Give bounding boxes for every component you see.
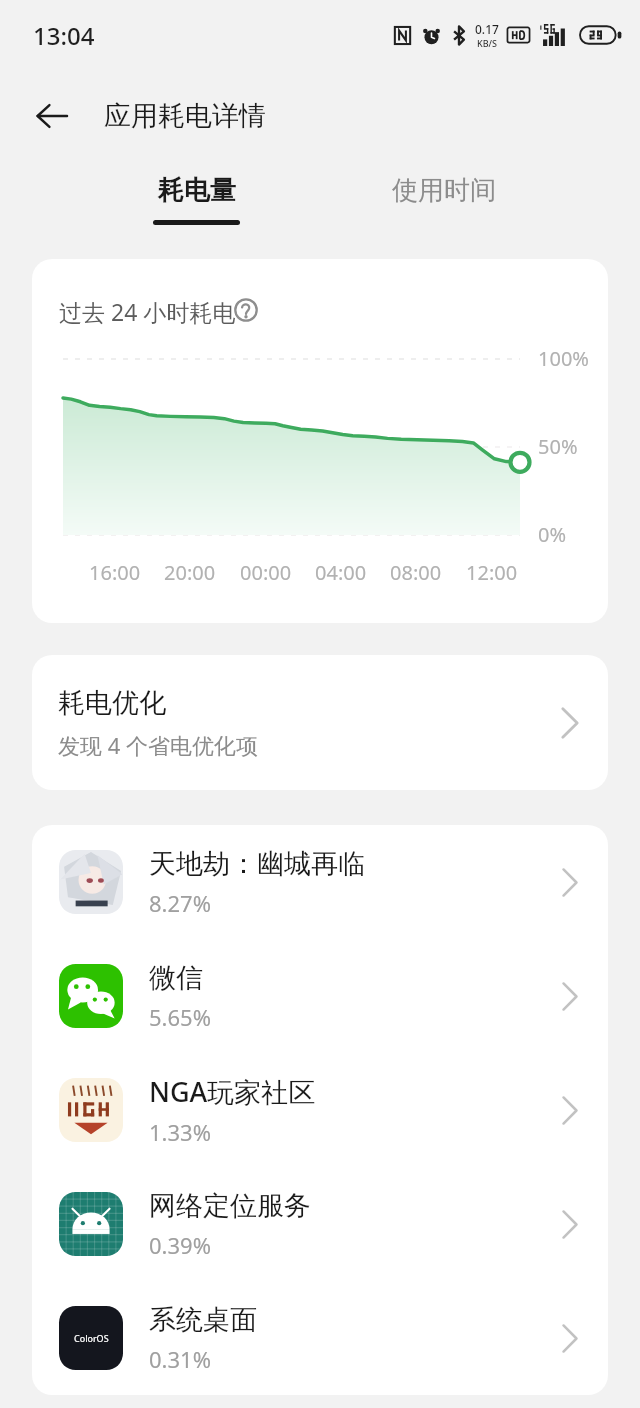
staticText: 网络定位服务 [149, 1189, 311, 1223]
button[interactable]: 微信 [32, 939, 608, 1053]
staticText: 0.17 [475, 21, 499, 37]
staticText: 20:00 [164, 559, 216, 586]
staticText: 1.33% [149, 1117, 211, 1147]
staticText: 0% [538, 521, 567, 548]
button[interactable]: 网络定位服务 [32, 1167, 608, 1281]
staticText: 00:00 [240, 559, 292, 586]
staticText: 13:04 [33, 19, 95, 52]
staticText: 0.31% [149, 1344, 211, 1374]
button[interactable]: Back [22, 86, 82, 146]
staticText: 系统桌面 [149, 1303, 257, 1337]
staticText: 100% [538, 345, 589, 372]
staticText: 微信 [149, 961, 203, 995]
staticText: 发现 4 个省电优化项 [58, 730, 259, 760]
staticText: 过去 24 小时耗电 [59, 296, 236, 327]
staticText: 5.65% [149, 1002, 211, 1032]
staticText: 应用耗电详情 [104, 99, 266, 133]
button[interactable]: 耗电优化 [32, 655, 608, 790]
staticText: 0.39% [149, 1230, 211, 1260]
staticText: 耗电量 [158, 174, 236, 207]
staticText: 50% [538, 433, 578, 460]
button[interactable]: 天地劫：幽城再临 [32, 825, 608, 939]
staticText: 12:00 [466, 559, 518, 586]
button[interactable]: ColorOS [32, 1281, 608, 1395]
button[interactable]: NGA玩家社区 [32, 1053, 608, 1167]
staticText: NGA玩家社区 [149, 1073, 316, 1110]
button[interactable]: 使用时间 [320, 160, 567, 248]
staticText: 8.27% [149, 888, 211, 918]
staticText: 耗电优化 [58, 686, 166, 720]
staticText: 天地劫：幽城再临 [149, 847, 365, 881]
staticText: ColorOS [74, 1332, 109, 1344]
staticText: 08:00 [390, 559, 442, 586]
staticText: 04:00 [315, 559, 367, 586]
staticText: 使用时间 [392, 174, 496, 207]
staticText: 16:00 [89, 559, 141, 586]
button[interactable]: 耗电量 [73, 160, 320, 248]
staticText: KB/S [477, 37, 497, 49]
other: Help [233, 297, 259, 323]
